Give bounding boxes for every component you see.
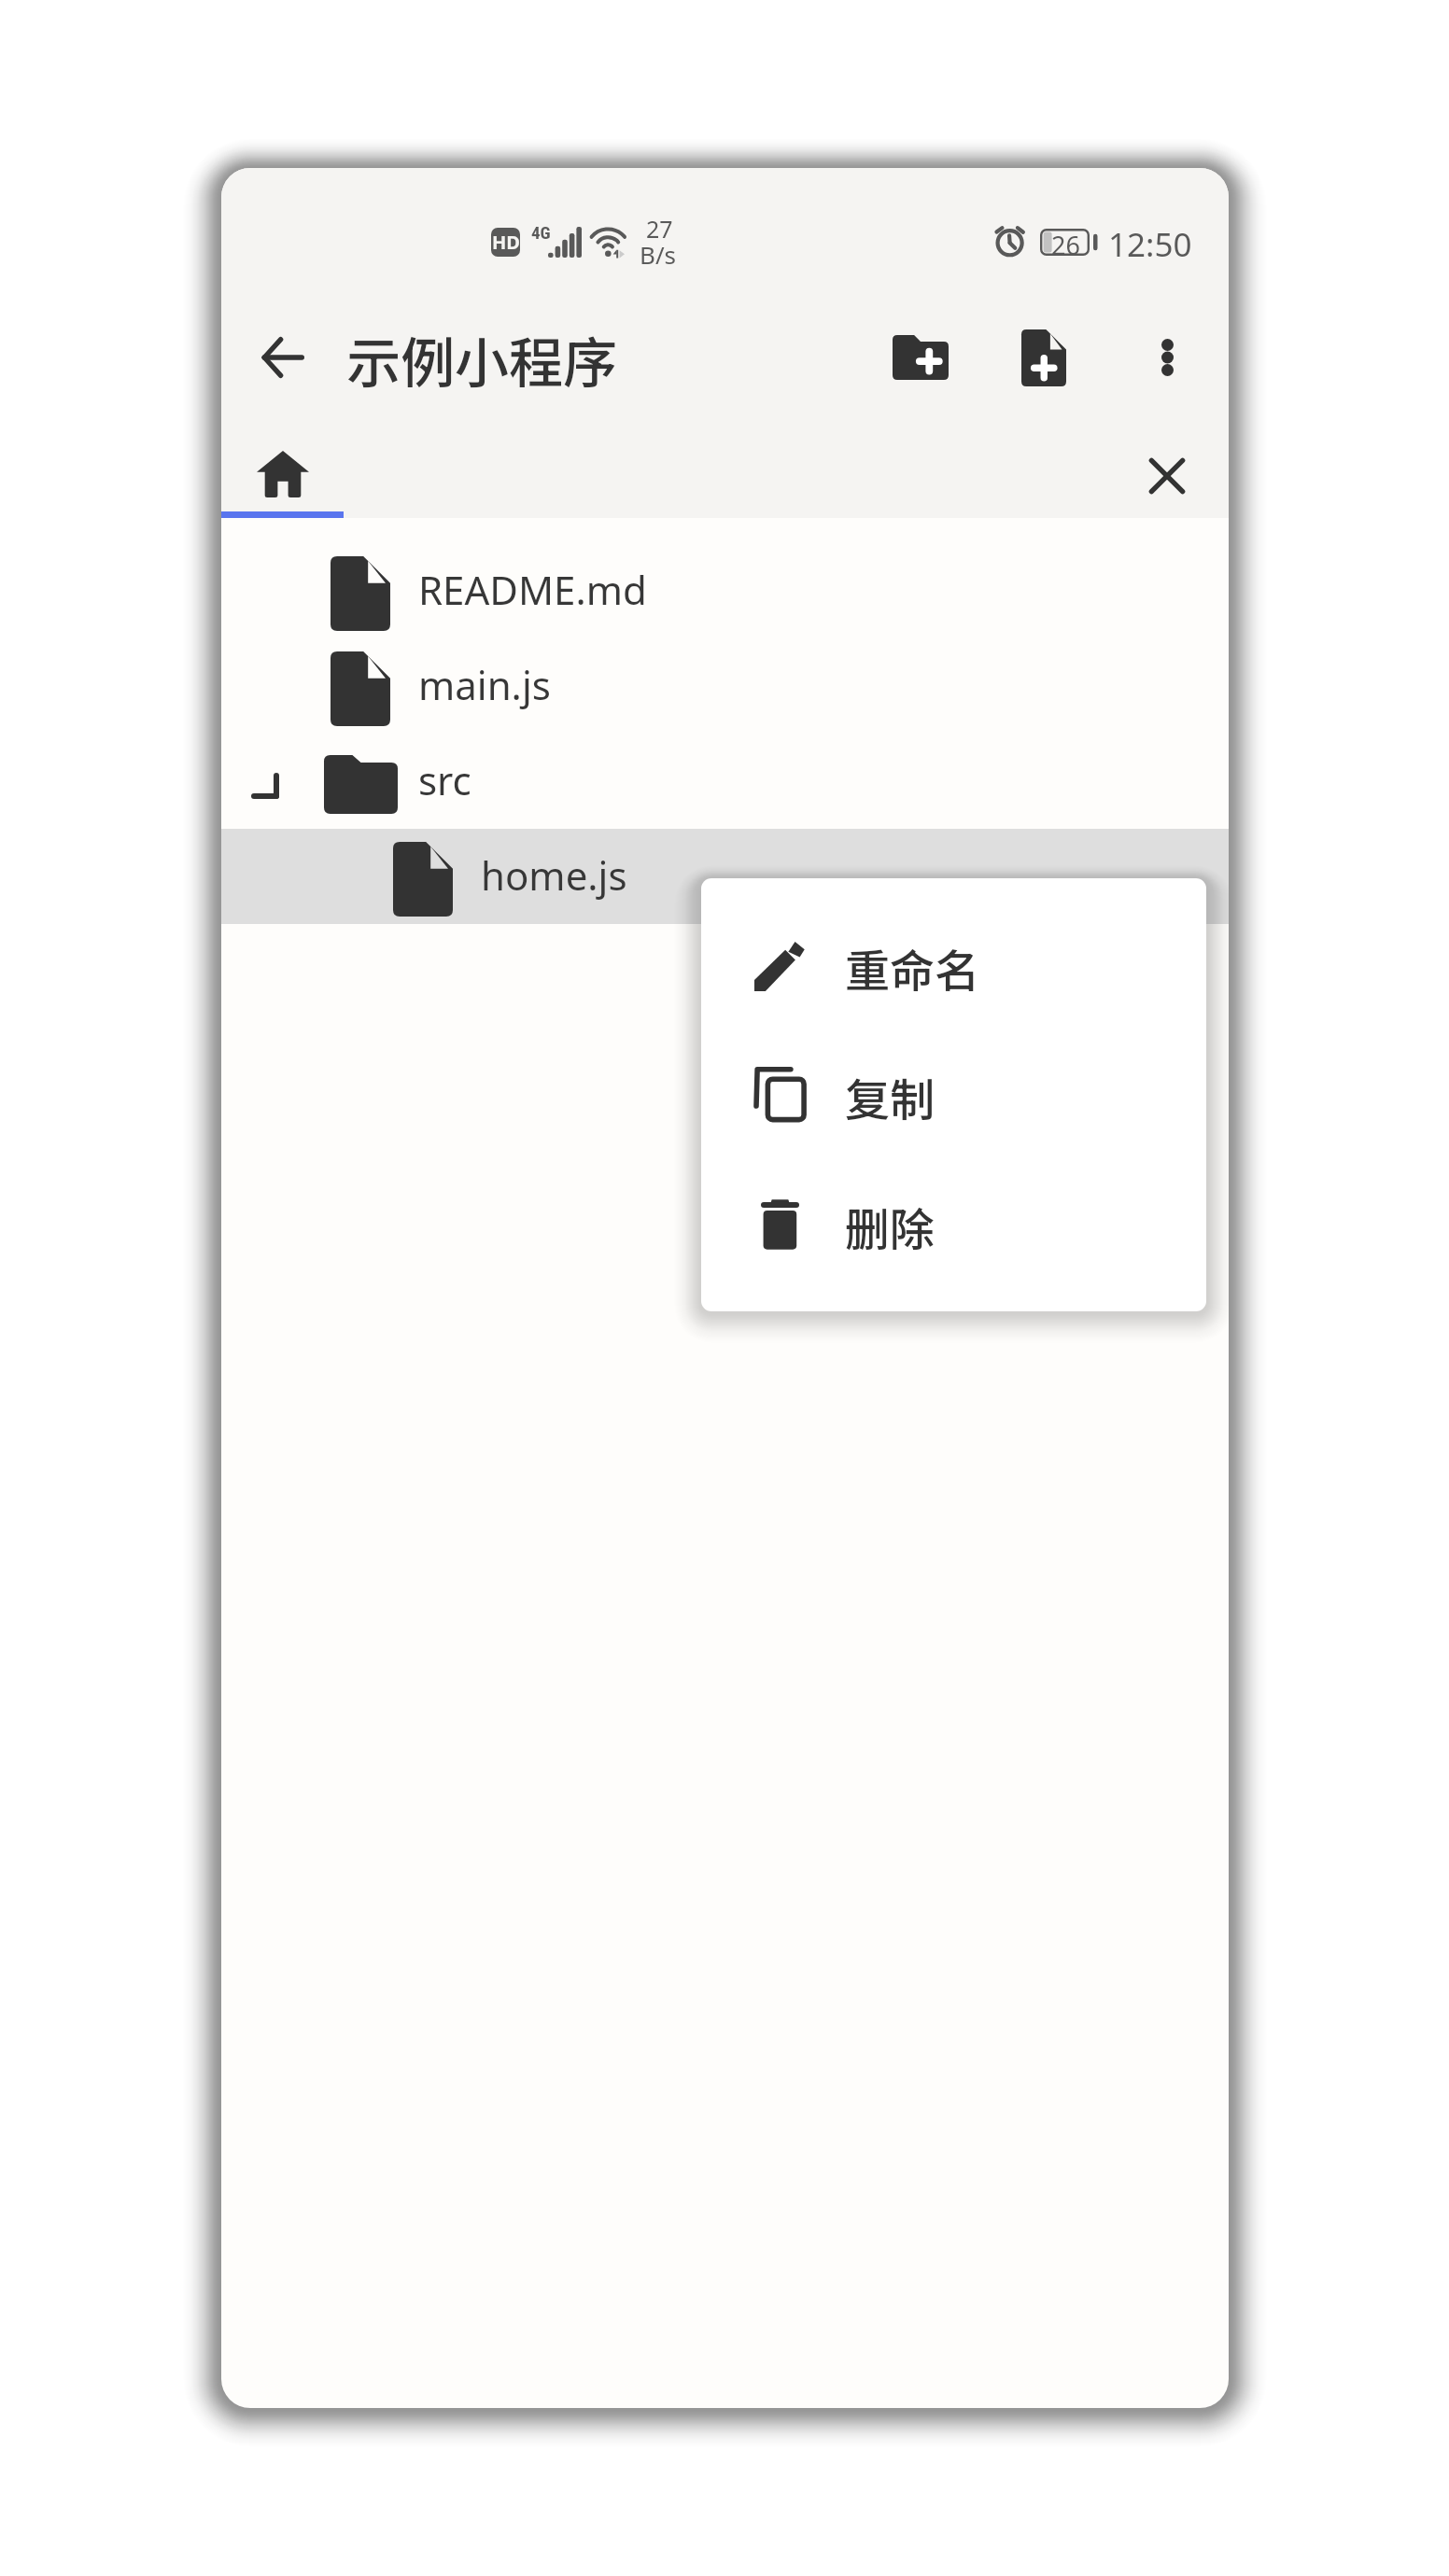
staticText: 12:50: [1108, 222, 1192, 267]
button[interactable]: main.js: [221, 638, 1229, 734]
button[interactable]: 删除: [701, 1160, 1206, 1289]
button[interactable]: Close: [1126, 435, 1208, 517]
staticText: B/s: [640, 238, 677, 271]
button[interactable]: 重命名: [701, 902, 1206, 1030]
staticText: home.js: [481, 848, 627, 902]
staticText: 复制: [845, 1064, 936, 1129]
button[interactable]: 复制: [701, 1030, 1206, 1159]
staticText: src: [418, 753, 471, 806]
button[interactable]: New folder: [879, 316, 962, 399]
button[interactable]: More options: [1126, 316, 1208, 399]
button[interactable]: Home tab: [221, 418, 344, 518]
button[interactable]: home.js: [221, 829, 1229, 924]
staticText: 示例小程序: [346, 320, 618, 399]
staticText: README.md: [418, 563, 647, 616]
button[interactable]: src: [221, 734, 1229, 829]
staticText: main.js: [418, 658, 551, 711]
button[interactable]: New file: [1003, 316, 1085, 399]
staticText: 删除: [845, 1194, 936, 1259]
staticText: 重命名: [845, 935, 980, 1001]
staticText: 27: [646, 213, 673, 245]
staticText: 4G: [531, 222, 551, 243]
staticText: 26: [1051, 228, 1080, 255]
staticText: HD: [492, 230, 520, 255]
button[interactable]: Back: [242, 316, 324, 399]
button[interactable]: README.md: [221, 543, 1229, 638]
